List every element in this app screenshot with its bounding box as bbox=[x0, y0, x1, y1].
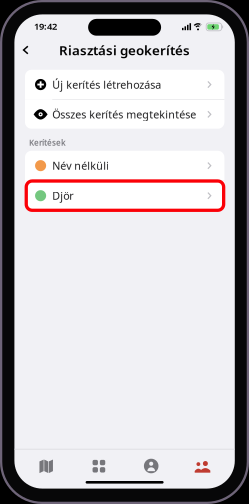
staticText: Djör bbox=[52, 189, 73, 203]
button[interactable]: Map bbox=[24, 451, 68, 481]
button[interactable]: Dashboard bbox=[77, 451, 121, 481]
staticText: Új kerítés létrehozása bbox=[52, 77, 161, 92]
staticText: 19:42 bbox=[34, 20, 57, 32]
staticText: Riasztási geokerítés bbox=[59, 41, 190, 59]
staticText: Összes kerítés megtekintése bbox=[52, 107, 196, 121]
button[interactable]: Profile bbox=[129, 451, 173, 481]
staticText: Név nélküli bbox=[52, 159, 109, 173]
button[interactable]: Groups bbox=[181, 452, 225, 482]
button[interactable]: Djör bbox=[25, 181, 224, 210]
button[interactable]: Név nélküli bbox=[25, 151, 224, 180]
button[interactable]: Back bbox=[16, 39, 36, 61]
staticText: Kerítések bbox=[29, 137, 66, 148]
button[interactable]: Új kerítés létrehozása bbox=[25, 70, 224, 99]
button[interactable]: Összes kerítés megtekintése bbox=[25, 100, 224, 129]
